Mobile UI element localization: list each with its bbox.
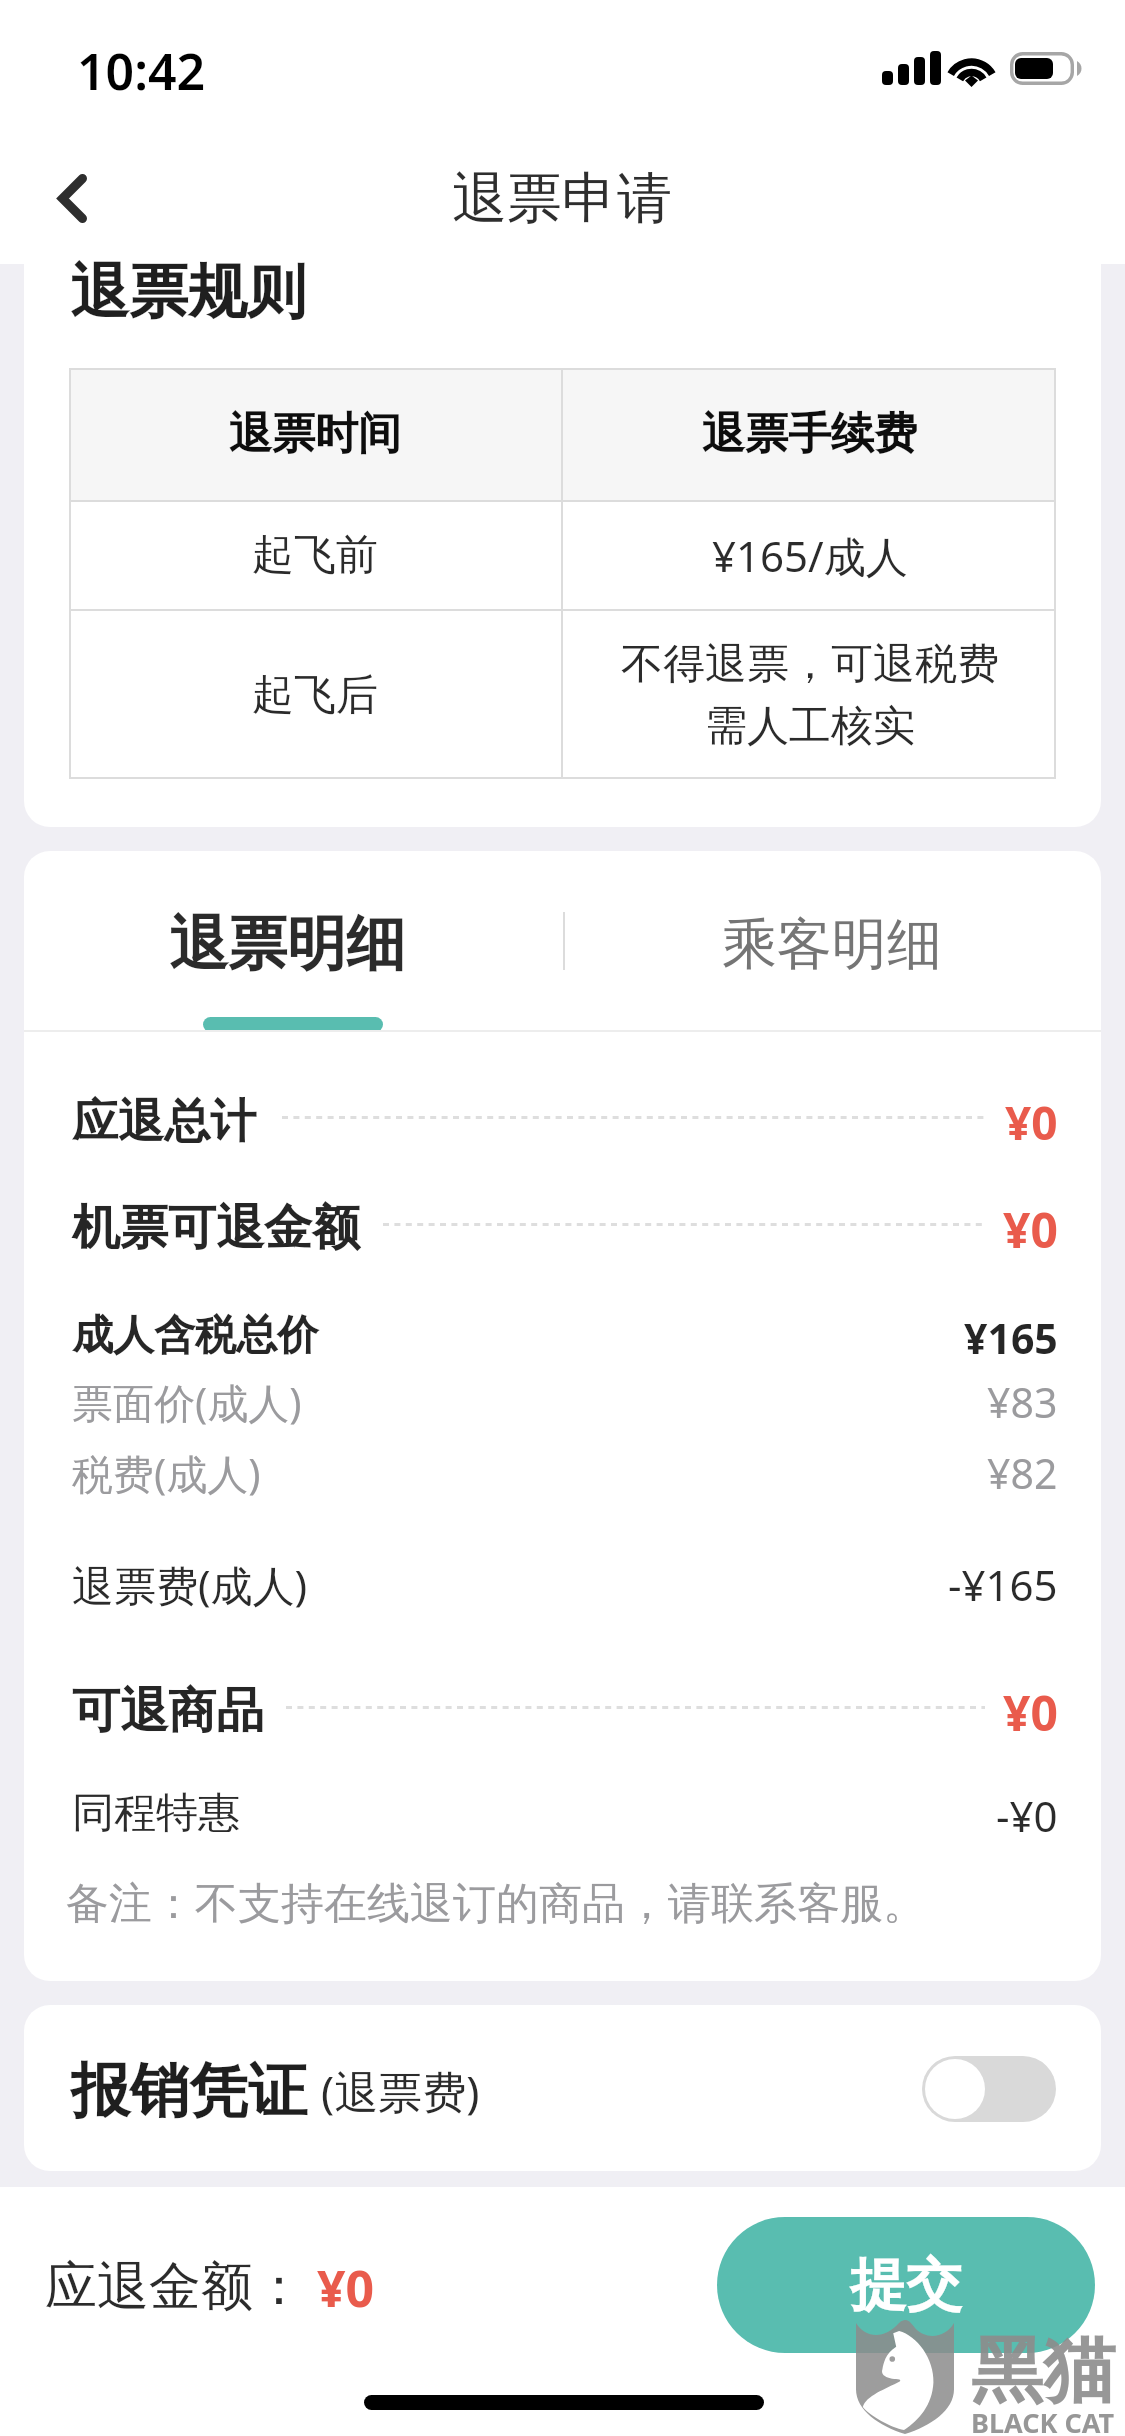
staticText: 黑猫 (971, 2326, 1115, 2417)
staticText: (退票费) (321, 2061, 480, 2121)
staticText: ¥165 (964, 1310, 1058, 1366)
staticText: 应退总计 (72, 1093, 256, 1151)
staticText: 乘客明细 (722, 910, 942, 979)
staticText: 报销凭证 (71, 2054, 307, 2128)
staticText: 同程特惠 (72, 1787, 240, 1840)
staticText: ¥82 (987, 1445, 1058, 1501)
staticText: 退票时间 (229, 407, 401, 461)
staticText: 退票费(成人) (72, 1556, 308, 1613)
button[interactable]: 退票明细 (24, 851, 562, 1031)
staticText: 提交 (850, 2250, 962, 2321)
staticText: 退票申请 (452, 164, 672, 233)
staticText: 票面价(成人) (72, 1374, 302, 1430)
staticText: 10:42 (77, 37, 206, 105)
staticText: 起飞前 (252, 529, 378, 582)
button[interactable]: Back (20, 146, 124, 250)
staticText: ¥0 (1003, 1680, 1058, 1745)
staticText: ¥0 (317, 2254, 375, 2322)
staticText: 机票可退金额 (72, 1198, 360, 1258)
staticText: 税费(成人) (72, 1445, 261, 1501)
button[interactable]: 乘客明细 (563, 851, 1101, 1031)
staticText: 不得退票，可退税费 需人工核实 (621, 638, 999, 753)
staticText: 应退金额： (45, 2254, 305, 2320)
staticText: 退票明细 (169, 907, 405, 981)
staticText: -¥165 (948, 1556, 1058, 1613)
staticText: 退票手续费 (702, 407, 917, 461)
button[interactable]: Invoice toggle (922, 2056, 1056, 2122)
staticText: 成人含税总价 (72, 1310, 318, 1362)
button[interactable]: 提交 (717, 2217, 1095, 2353)
staticText: ¥0 (1003, 1197, 1058, 1262)
staticText: 退票规则 (70, 255, 306, 329)
staticText: ¥83 (987, 1374, 1058, 1430)
staticText: 起飞后 (252, 669, 378, 722)
staticText: -¥0 (996, 1787, 1058, 1844)
staticText: 备注：不支持在线退订的商品，请联系客服。 (66, 1877, 926, 1931)
staticText: ¥0 (1005, 1091, 1058, 1154)
staticText: ¥165/成人 (712, 527, 908, 584)
staticText: BLACK CAT (971, 2404, 1115, 2436)
staticText: 可退商品 (72, 1681, 264, 1741)
